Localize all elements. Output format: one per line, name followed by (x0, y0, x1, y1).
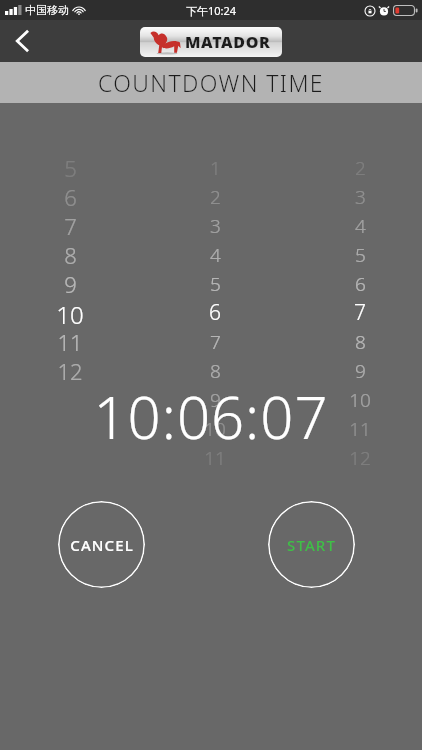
staticText: 4 (355, 213, 366, 239)
staticText: 11 (349, 416, 371, 442)
staticText: 6 (209, 298, 221, 327)
staticText: 10 (349, 387, 371, 413)
staticText: 9 (64, 269, 77, 298)
staticText: 下午10:24 (186, 3, 237, 18)
staticText: 8 (64, 240, 77, 269)
staticText: 5 (64, 153, 77, 182)
staticText: 10:06:07 (0, 377, 422, 456)
staticText: 2 (355, 155, 366, 181)
staticText: 3 (355, 184, 366, 210)
staticText: 5 (355, 242, 366, 268)
staticText: 11 (57, 327, 83, 356)
button[interactable]: Number wheel, selected 7 (314, 103, 406, 750)
staticText: 6 (355, 271, 366, 297)
staticText: 8 (210, 358, 221, 384)
button[interactable]: Start (268, 501, 355, 588)
staticText: 3 (210, 213, 221, 239)
button[interactable]: Matador (140, 27, 282, 57)
button[interactable]: Cancel (58, 501, 145, 588)
staticText: 4 (210, 242, 221, 268)
staticText: 12 (349, 445, 371, 471)
staticText: START (287, 535, 336, 555)
staticText: 6 (64, 182, 77, 211)
staticText: 7 (64, 211, 77, 240)
button[interactable]: Number wheel, selected 10 (24, 103, 116, 750)
staticText: 12 (57, 356, 83, 385)
staticText: 9 (210, 387, 221, 413)
staticText: 10 (56, 298, 84, 327)
staticText: 7 (354, 298, 366, 327)
staticText: MATADOR (185, 31, 271, 53)
button[interactable]: Back (0, 20, 44, 62)
staticText: 7 (210, 329, 221, 355)
staticText: 中国移动 (25, 3, 69, 17)
staticText: 2 (210, 184, 221, 210)
staticText: 5 (210, 271, 221, 297)
staticText: 11 (204, 445, 226, 471)
staticText: 1 (210, 155, 221, 181)
button[interactable]: Number wheel, selected 6 (169, 103, 261, 750)
staticText: 8 (355, 329, 366, 355)
staticText: CANCEL (70, 535, 134, 555)
staticText: COUNTDOWN TIME (98, 67, 324, 98)
staticText: 9 (355, 358, 366, 384)
staticText: 10 (204, 416, 226, 442)
